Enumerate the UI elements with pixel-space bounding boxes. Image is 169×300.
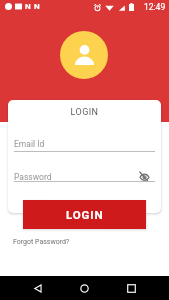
staticText: Password — [14, 172, 52, 182]
staticText: LOGIN — [8, 107, 161, 118]
button[interactable]: Show password — [138, 170, 150, 182]
staticText: Forgot Password? — [13, 238, 70, 246]
button[interactable]: Home — [73, 276, 96, 300]
button[interactable]: LOGIN — [23, 200, 146, 229]
button[interactable]: Recents — [120, 276, 143, 300]
staticText: N — [34, 2, 40, 11]
staticText: LOGIN — [66, 208, 104, 221]
button[interactable]: Back — [26, 276, 49, 300]
button[interactable]: Forgot Password? — [12, 237, 71, 247]
staticText: N — [25, 2, 31, 11]
staticText: 12:49 — [144, 2, 166, 12]
staticText: Email Id — [14, 139, 45, 149]
